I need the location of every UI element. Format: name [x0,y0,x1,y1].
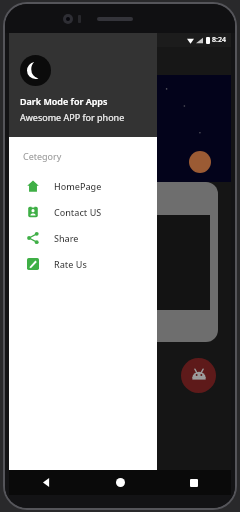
staticText: Dark Mode for Apps [20,95,108,107]
button[interactable]: Share [9,225,157,251]
button[interactable]: Recent apps [157,470,231,495]
staticText: Share [54,232,79,244]
button[interactable]: Back [9,470,83,495]
staticText: Awesome APP for phone [20,111,125,123]
button[interactable]: Apply dark mode [181,358,216,393]
button[interactable]: Contact US [9,199,157,225]
button[interactable]: Home [83,470,157,495]
button[interactable]: HomePage [9,173,157,199]
button[interactable]: Rate Us [9,251,157,277]
staticText: Contact US [54,206,102,218]
staticText: 8:24 [212,35,226,45]
staticText: Rate Us [54,258,87,270]
staticText: Cetegory [23,150,62,162]
staticText: HomePage [54,180,102,192]
